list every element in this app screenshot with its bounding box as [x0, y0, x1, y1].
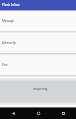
- staticText: Port: [2, 63, 8, 67]
- button[interactable]: Message: [0, 14, 76, 32]
- staticText: Message: [2, 19, 14, 23]
- staticText: Plesk Inline: [2, 2, 20, 6]
- button[interactable]: Port: [0, 58, 76, 76]
- button[interactable]: Back: [7, 108, 19, 119]
- button[interactable]: Plesk Inline: [0, 0, 76, 10]
- button[interactable]: envoyer msg: [0, 77, 76, 106]
- staticText: envoyer msg: [33, 87, 48, 91]
- button[interactable]: Recent apps: [57, 108, 69, 119]
- button[interactable]: Adresse Ip: [0, 36, 76, 54]
- staticText: Adresse Ip: [2, 41, 16, 45]
- button[interactable]: Home: [32, 108, 44, 119]
